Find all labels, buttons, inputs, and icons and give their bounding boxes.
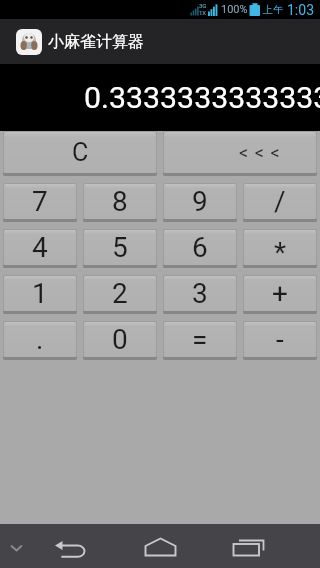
staticText: 1X [199,9,207,16]
staticText: / [274,185,286,218]
staticText: 100% [221,3,248,16]
staticText: 0 [112,323,128,356]
staticText: 2 [112,277,128,310]
staticText: 1 [32,277,48,310]
staticText: 上午 [263,3,283,16]
staticText: 4 [32,231,48,264]
staticText: 3 [192,277,208,310]
staticText: * [274,236,287,265]
staticText: 小麻雀计算器 [48,32,144,52]
staticText: C [72,138,89,167]
staticText: <<< [239,142,287,163]
staticText: = [192,323,208,356]
staticText: 8 [112,185,128,218]
staticText: 3G [199,2,207,9]
staticText: 5 [112,231,128,264]
staticText: 0.3333333333333333 [84,80,320,116]
staticText: + [272,277,288,310]
staticText: 9 [192,185,208,218]
staticText: 7 [32,185,48,218]
staticText: . [36,323,44,356]
staticText: 6 [192,231,208,264]
staticText: 1:03 [287,2,314,18]
staticText: - [276,323,284,356]
